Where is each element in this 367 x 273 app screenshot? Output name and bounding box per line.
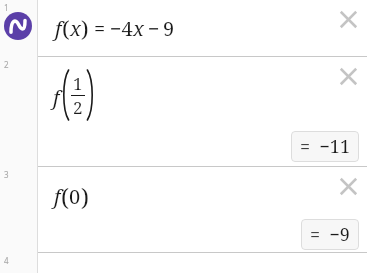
staticText: ( — [61, 181, 69, 212]
staticText: f — [54, 183, 61, 210]
staticText: 1 — [4, 2, 9, 13]
staticText: − — [148, 15, 160, 42]
button[interactable]: f — [38, 0, 367, 56]
staticText: x — [70, 15, 81, 42]
staticText: −4 — [110, 15, 133, 42]
staticText: 2 — [73, 96, 83, 119]
button[interactable]: Delete row — [331, 2, 365, 36]
staticText: ) — [81, 13, 89, 43]
button[interactable]: Delete row — [331, 169, 365, 203]
staticText: = −9 — [310, 222, 350, 247]
staticText: ) — [81, 181, 89, 212]
button[interactable] — [38, 57, 367, 166]
staticText: ( — [62, 13, 70, 43]
staticText: f — [55, 15, 62, 42]
button[interactable]: GeoGebra function icon — [4, 12, 32, 40]
staticText: 9 — [163, 15, 175, 42]
staticText: 1 — [73, 72, 83, 95]
staticText: 2 — [4, 59, 9, 70]
button[interactable]: = −11 — [291, 131, 359, 162]
staticText: 0 — [69, 183, 81, 210]
staticText: 4 — [4, 255, 9, 266]
staticText: f — [53, 84, 60, 111]
button[interactable]: Delete row — [331, 59, 365, 93]
staticText: 3 — [4, 169, 9, 180]
staticText: = −11 — [300, 134, 350, 159]
button[interactable] — [38, 167, 367, 252]
staticText: = — [94, 15, 106, 42]
button[interactable]: = −9 — [301, 219, 359, 250]
staticText: x — [133, 15, 144, 42]
